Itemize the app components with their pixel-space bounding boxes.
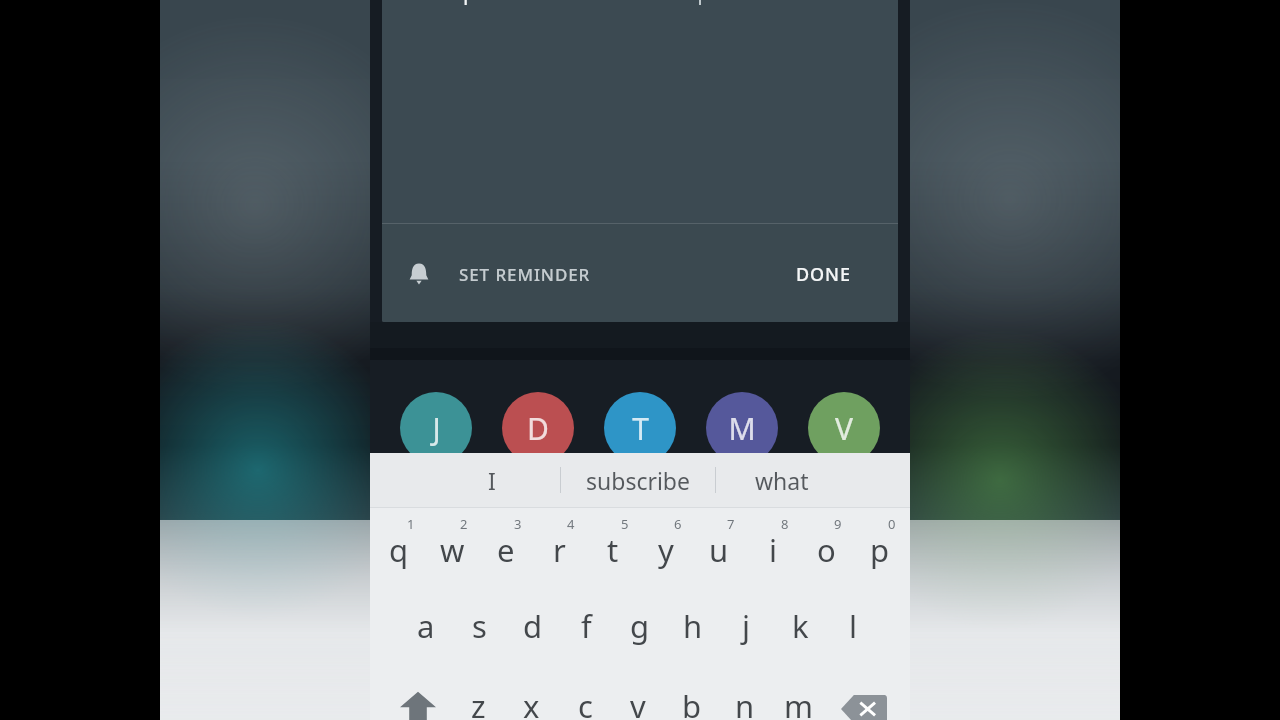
button[interactable]: 5 bbox=[587, 515, 639, 593]
staticText: g bbox=[630, 605, 650, 647]
staticText: v bbox=[630, 685, 646, 720]
staticText: a bbox=[417, 605, 435, 647]
button[interactable]: D bbox=[502, 392, 574, 464]
staticText: f bbox=[581, 605, 592, 647]
staticText: w bbox=[440, 529, 465, 571]
staticText: n bbox=[735, 685, 755, 720]
other: Set reminder bbox=[406, 261, 432, 287]
button[interactable]: subscribe bbox=[576, 453, 700, 507]
button[interactable]: T bbox=[604, 392, 676, 464]
button[interactable]: 6 bbox=[640, 515, 692, 593]
staticText: h bbox=[683, 605, 703, 647]
staticText: M bbox=[728, 408, 756, 449]
staticText: z bbox=[471, 685, 486, 720]
staticText: b bbox=[682, 685, 702, 720]
button[interactable]: d bbox=[507, 605, 559, 681]
staticText: 0 bbox=[888, 515, 896, 533]
staticText: 2 bbox=[460, 515, 468, 533]
button[interactable]: j bbox=[720, 605, 772, 681]
staticText: I bbox=[488, 465, 496, 496]
staticText: m bbox=[784, 685, 813, 720]
staticText: 8 bbox=[781, 515, 789, 533]
button[interactable]: g bbox=[614, 605, 666, 681]
button[interactable]: m bbox=[772, 685, 824, 720]
button[interactable]: f bbox=[560, 605, 612, 681]
staticText: c bbox=[578, 685, 593, 720]
button[interactable]: J bbox=[400, 392, 472, 464]
staticText: V bbox=[835, 408, 853, 449]
staticText: d bbox=[523, 605, 543, 647]
button[interactable]: a bbox=[400, 605, 452, 681]
staticText: 9 bbox=[834, 515, 842, 533]
staticText: s bbox=[472, 605, 487, 647]
staticText: 4 bbox=[567, 515, 575, 533]
staticText: what bbox=[755, 465, 809, 496]
staticText: subscribe bbox=[586, 465, 690, 496]
staticText: e bbox=[497, 529, 515, 571]
button[interactable]: Set reminder bbox=[400, 246, 597, 302]
staticText: 5 bbox=[621, 515, 629, 533]
button[interactable]: 8 bbox=[747, 515, 799, 593]
button[interactable]: what bbox=[720, 453, 844, 507]
staticText: p bbox=[870, 529, 890, 571]
staticText: 6 bbox=[674, 515, 682, 533]
staticText: u bbox=[709, 529, 729, 571]
staticText: k bbox=[792, 605, 809, 647]
button[interactable]: 3 bbox=[480, 515, 532, 593]
staticText: 3 bbox=[514, 515, 522, 533]
button[interactable]: v bbox=[612, 685, 664, 720]
button[interactable]: 7 bbox=[693, 515, 745, 593]
button[interactable]: 4 bbox=[533, 515, 585, 593]
staticText: i bbox=[769, 529, 777, 571]
staticText: DONE bbox=[796, 262, 851, 287]
staticText: D bbox=[527, 408, 549, 449]
staticText: y bbox=[658, 529, 674, 571]
staticText: o bbox=[817, 529, 836, 571]
button[interactable]: z bbox=[452, 685, 504, 720]
button[interactable]: I bbox=[430, 453, 554, 507]
button[interactable]: n bbox=[719, 685, 771, 720]
staticText: l bbox=[849, 605, 857, 647]
staticText: T bbox=[632, 408, 649, 449]
staticText: 7 bbox=[727, 515, 735, 533]
button[interactable]: DONE bbox=[782, 246, 865, 302]
button[interactable]: Shift bbox=[386, 685, 450, 720]
button[interactable]: c bbox=[559, 685, 611, 720]
button[interactable]: 2 bbox=[426, 515, 478, 593]
button[interactable]: M bbox=[706, 392, 778, 464]
button[interactable]: V bbox=[808, 392, 880, 464]
button[interactable]: 1 bbox=[373, 515, 425, 593]
staticText: J bbox=[432, 408, 441, 449]
button[interactable]: Backspace bbox=[832, 685, 896, 720]
staticText: 1 bbox=[407, 515, 415, 533]
button[interactable]: s bbox=[453, 605, 505, 681]
staticText: x bbox=[523, 685, 540, 720]
staticText: q bbox=[389, 529, 409, 571]
button[interactable]: 0 bbox=[854, 515, 906, 593]
button[interactable]: b bbox=[666, 685, 718, 720]
button[interactable]: x bbox=[505, 685, 557, 720]
staticText: description below..like and bbox=[404, 0, 667, 7]
staticText: t bbox=[607, 529, 619, 571]
button[interactable]: l bbox=[827, 605, 879, 681]
button[interactable]: h bbox=[667, 605, 719, 681]
button[interactable]: 9 bbox=[800, 515, 852, 593]
button[interactable]: k bbox=[774, 605, 826, 681]
staticText: SET REMINDER bbox=[459, 263, 591, 286]
staticText: j bbox=[742, 605, 750, 647]
staticText: r bbox=[553, 529, 566, 571]
